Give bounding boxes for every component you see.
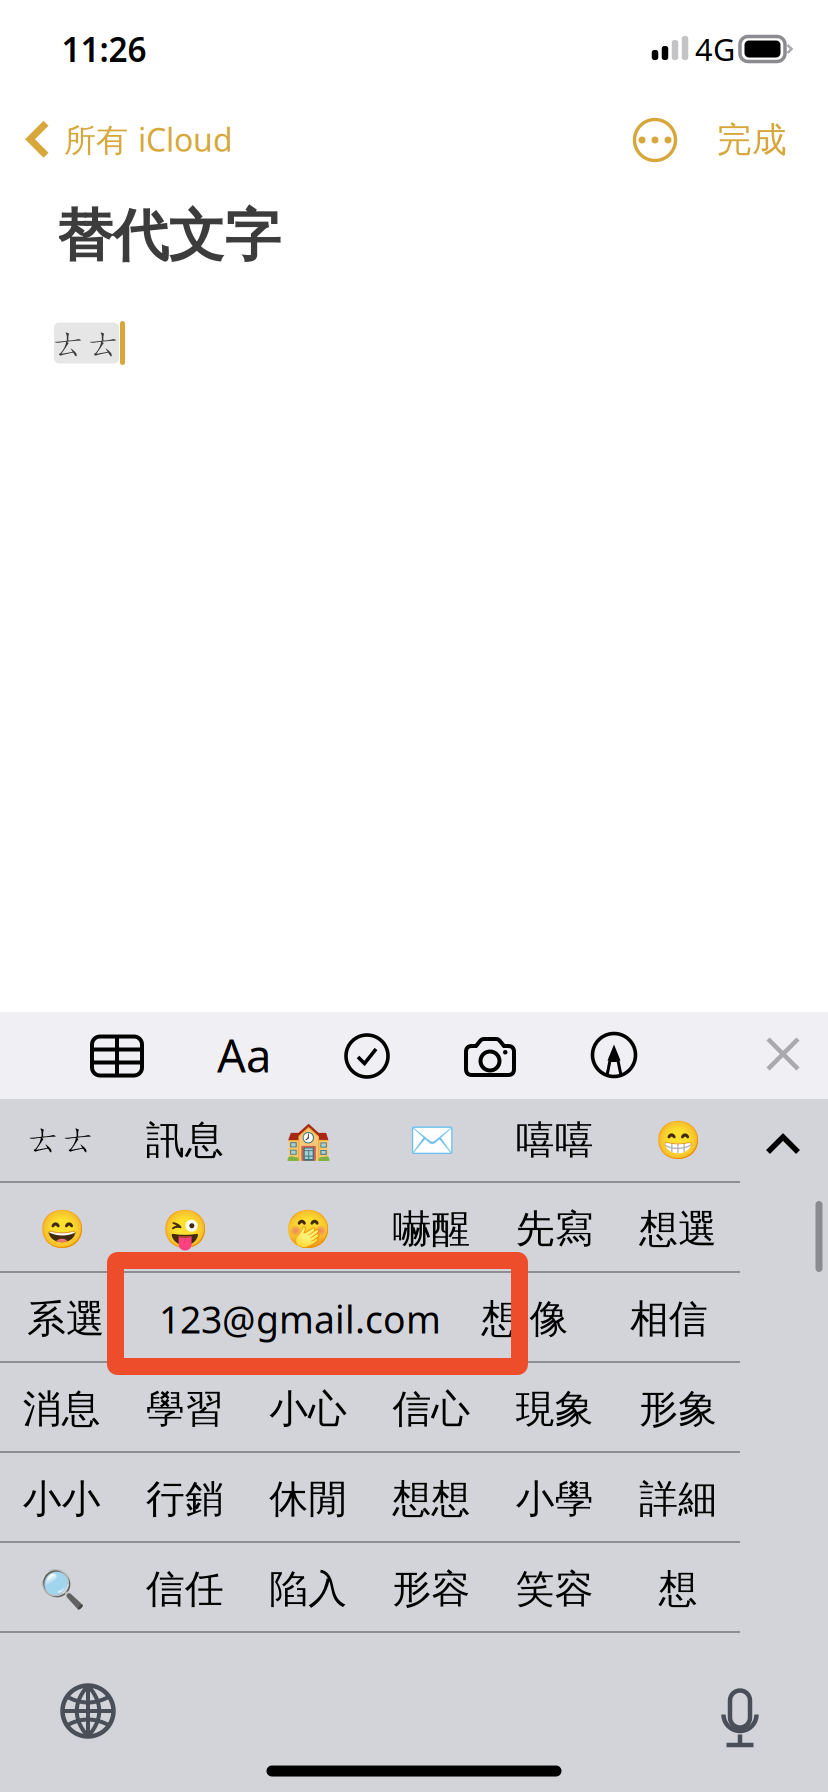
staticText: 想 bbox=[659, 1565, 698, 1613]
staticText: 4G bbox=[695, 29, 735, 69]
button[interactable]: 小學 bbox=[493, 1455, 616, 1543]
button[interactable]: 詳細 bbox=[617, 1455, 740, 1543]
button[interactable]: 學習 bbox=[123, 1365, 246, 1453]
button[interactable]: 🤭 bbox=[247, 1185, 370, 1273]
button[interactable]: Dictate bbox=[697, 1657, 782, 1761]
button[interactable]: 陷入 bbox=[247, 1545, 370, 1633]
button[interactable]: Camera bbox=[444, 1017, 536, 1097]
button[interactable]: Expand candidates bbox=[743, 1112, 823, 1177]
staticText: ✉️ bbox=[409, 1119, 455, 1161]
staticText: 想選 bbox=[639, 1205, 717, 1253]
button[interactable]: 🔍 bbox=[0, 1545, 123, 1633]
staticText: 形容 bbox=[393, 1565, 471, 1613]
button[interactable]: 先寫 bbox=[493, 1185, 616, 1273]
staticText: 詳細 bbox=[639, 1475, 717, 1523]
button[interactable]: 信任 bbox=[123, 1545, 246, 1633]
staticText: 信任 bbox=[146, 1565, 224, 1613]
staticText: 訊息 bbox=[146, 1116, 224, 1164]
staticText: 想 bbox=[481, 1295, 520, 1343]
button[interactable]: 形容 bbox=[370, 1545, 493, 1633]
staticText: 替代文字 bbox=[56, 202, 280, 270]
button[interactable]: 😄 bbox=[0, 1185, 123, 1273]
staticText: ㄊㄊ bbox=[52, 323, 122, 365]
staticText: 小心 bbox=[269, 1385, 347, 1433]
staticText: 嚇醒 bbox=[393, 1205, 471, 1253]
staticText: 小小 bbox=[23, 1475, 101, 1523]
staticText: 完成 bbox=[717, 119, 787, 161]
staticText: 123@gmail.com bbox=[159, 1294, 441, 1344]
staticText: 😜 bbox=[162, 1208, 208, 1250]
staticText: ㄊㄊ bbox=[27, 1119, 97, 1161]
staticText: 學習 bbox=[146, 1385, 224, 1433]
button[interactable]: 相信 bbox=[607, 1275, 730, 1363]
button[interactable]: 形象 bbox=[617, 1365, 740, 1453]
button[interactable]: Table bbox=[71, 1015, 163, 1096]
staticText: 信心 bbox=[393, 1385, 471, 1433]
button[interactable]: 完成 bbox=[693, 101, 811, 179]
button[interactable]: 想想 bbox=[370, 1455, 493, 1543]
button[interactable]: Text format bbox=[195, 1005, 293, 1105]
staticText: 嘻嘻 bbox=[516, 1116, 594, 1164]
staticText: Aa bbox=[217, 1025, 271, 1085]
button[interactable]: 像 bbox=[522, 1275, 576, 1363]
button[interactable]: 123@gmail.com bbox=[150, 1275, 450, 1363]
button[interactable]: 想 bbox=[617, 1545, 740, 1633]
staticText: 🏫 bbox=[285, 1119, 331, 1161]
button[interactable]: Next keyboard bbox=[37, 1660, 138, 1761]
button[interactable]: ㄊㄊ bbox=[0, 1096, 123, 1184]
button[interactable]: 所有 iCloud bbox=[0, 100, 255, 178]
staticText: 相信 bbox=[630, 1295, 708, 1343]
button[interactable]: Close keyboard bbox=[744, 1015, 822, 1093]
staticText: 小學 bbox=[516, 1475, 594, 1523]
staticText: 所有 iCloud bbox=[64, 118, 233, 160]
staticText: 現象 bbox=[516, 1385, 594, 1433]
button[interactable]: 信心 bbox=[370, 1365, 493, 1453]
staticText: 笑容 bbox=[516, 1565, 594, 1613]
button[interactable]: 小心 bbox=[247, 1365, 370, 1453]
button[interactable]: More bbox=[616, 101, 694, 179]
button[interactable]: 嚇醒 bbox=[370, 1185, 493, 1273]
button[interactable]: Markup bbox=[572, 1013, 656, 1097]
staticText: 像 bbox=[529, 1295, 568, 1343]
button[interactable]: 🏫 bbox=[247, 1096, 370, 1184]
staticText: 😄 bbox=[39, 1208, 85, 1250]
button[interactable]: 想 bbox=[471, 1275, 531, 1363]
button[interactable]: 想選 bbox=[617, 1185, 740, 1273]
staticText: 行銷 bbox=[146, 1475, 224, 1523]
staticText: 消息 bbox=[23, 1385, 101, 1433]
button[interactable]: 訊息 bbox=[123, 1096, 246, 1184]
button[interactable]: Checklist bbox=[325, 1014, 409, 1098]
button[interactable]: 笑容 bbox=[493, 1545, 616, 1633]
staticText: 🤭 bbox=[285, 1208, 331, 1250]
button[interactable]: 消息 bbox=[0, 1365, 123, 1453]
button[interactable]: 嘻嘻 bbox=[493, 1096, 616, 1184]
button[interactable]: 現象 bbox=[493, 1365, 616, 1453]
button[interactable]: 系選 bbox=[11, 1275, 121, 1363]
button[interactable]: 行銷 bbox=[123, 1455, 246, 1543]
staticText: 🔍 bbox=[39, 1568, 85, 1610]
button[interactable]: ✉️ bbox=[370, 1096, 493, 1184]
button[interactable]: 小小 bbox=[0, 1455, 123, 1543]
staticText: 休閒 bbox=[269, 1475, 347, 1523]
staticText: 想想 bbox=[393, 1475, 471, 1523]
staticText: 陷入 bbox=[269, 1565, 347, 1613]
staticText: 形象 bbox=[639, 1385, 717, 1433]
staticText: 😁 bbox=[655, 1119, 701, 1161]
button[interactable]: 😜 bbox=[123, 1185, 246, 1273]
button[interactable]: 😁 bbox=[617, 1096, 740, 1184]
button[interactable]: 休閒 bbox=[247, 1455, 370, 1543]
staticText: 系選 bbox=[27, 1295, 105, 1343]
staticText: 11:26 bbox=[61, 27, 146, 71]
staticText: 先寫 bbox=[516, 1205, 594, 1253]
